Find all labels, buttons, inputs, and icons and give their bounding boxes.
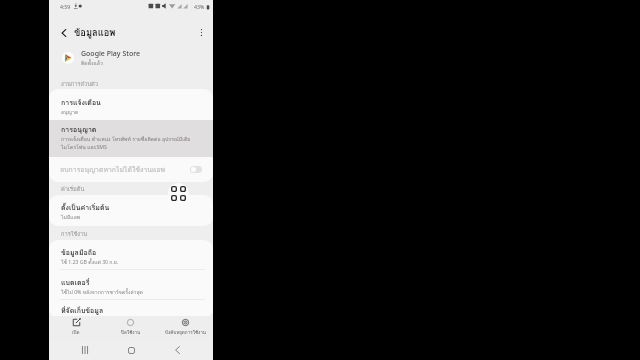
staticText: แบตเตอรี่ <box>61 277 90 288</box>
button[interactable]: ลบการอนุญาตหากไม่ได้ใช้งานแอพ <box>49 157 213 182</box>
staticText: ไม่มีแอพ <box>61 213 81 221</box>
button[interactable]: เปิด <box>49 316 103 340</box>
button[interactable]: Back <box>165 342 189 358</box>
staticText: ข้อมูลมือถือ <box>61 247 97 258</box>
staticText: อนุญาต <box>61 108 79 116</box>
button[interactable]: Back <box>57 26 70 39</box>
button[interactable]: Google Play Store <box>49 45 213 71</box>
staticText: ใช้ 1.23 GB ตั้งแต่ 30 ก.ย. <box>61 258 119 266</box>
button[interactable]: ที่จัดเก็บข้อมูล <box>49 300 213 316</box>
button[interactable]: ตั้งเป็นค่าเริ่มต้น <box>49 195 213 226</box>
button[interactable]: Toggle <box>190 166 202 173</box>
staticText: การใช้งาน <box>61 229 88 238</box>
button[interactable]: ข้อมูลมือถือ <box>49 240 213 269</box>
staticText: ข้อมูลแอพ <box>74 25 116 40</box>
button[interactable]: บังคับหยุดการใช้งาน <box>158 316 213 340</box>
button[interactable]: การอนุญาต <box>49 120 213 157</box>
staticText: Google Play Store <box>81 49 141 59</box>
staticText: การแจ้งเตือน ตำแหน่ง โทรศัพท์ รายชื่อติด… <box>61 135 205 151</box>
button[interactable]: Recents <box>73 342 97 358</box>
staticText: บังคับหยุดการใช้งาน <box>165 329 207 336</box>
button[interactable]: การแจ้งเตือน <box>49 89 213 120</box>
staticText: เปิด <box>72 329 80 336</box>
staticText: ที่จัดเก็บข้อมูล <box>61 305 104 316</box>
staticText: 43% <box>194 3 205 10</box>
button[interactable]: App grid <box>168 183 189 204</box>
button[interactable]: Home <box>119 342 143 358</box>
staticText: การอนุญาต <box>61 124 97 135</box>
staticText: การแจ้งเตือน <box>61 97 101 108</box>
staticText: งานการส่วนตัว <box>61 79 98 88</box>
staticText: ปิดใช้งาน <box>121 329 141 336</box>
staticText: ติดตั้งแล้ว <box>81 59 103 67</box>
staticText: 4:59 <box>60 3 71 10</box>
staticText: ลบการอนุญาตหากไม่ได้ใช้งานแอพ <box>60 164 190 175</box>
button[interactable]: ปิดใช้งาน <box>103 316 158 340</box>
button[interactable]: More options <box>195 26 208 39</box>
staticText: ค่าเริ่มต้น <box>61 184 85 193</box>
button[interactable]: แบตเตอรี่ <box>49 270 213 299</box>
staticText: ใช้ไป 0% หลังจากการชาร์จครั้งล่าสุด <box>61 288 143 296</box>
staticText: ตั้งเป็นค่าเริ่มต้น <box>61 202 110 213</box>
